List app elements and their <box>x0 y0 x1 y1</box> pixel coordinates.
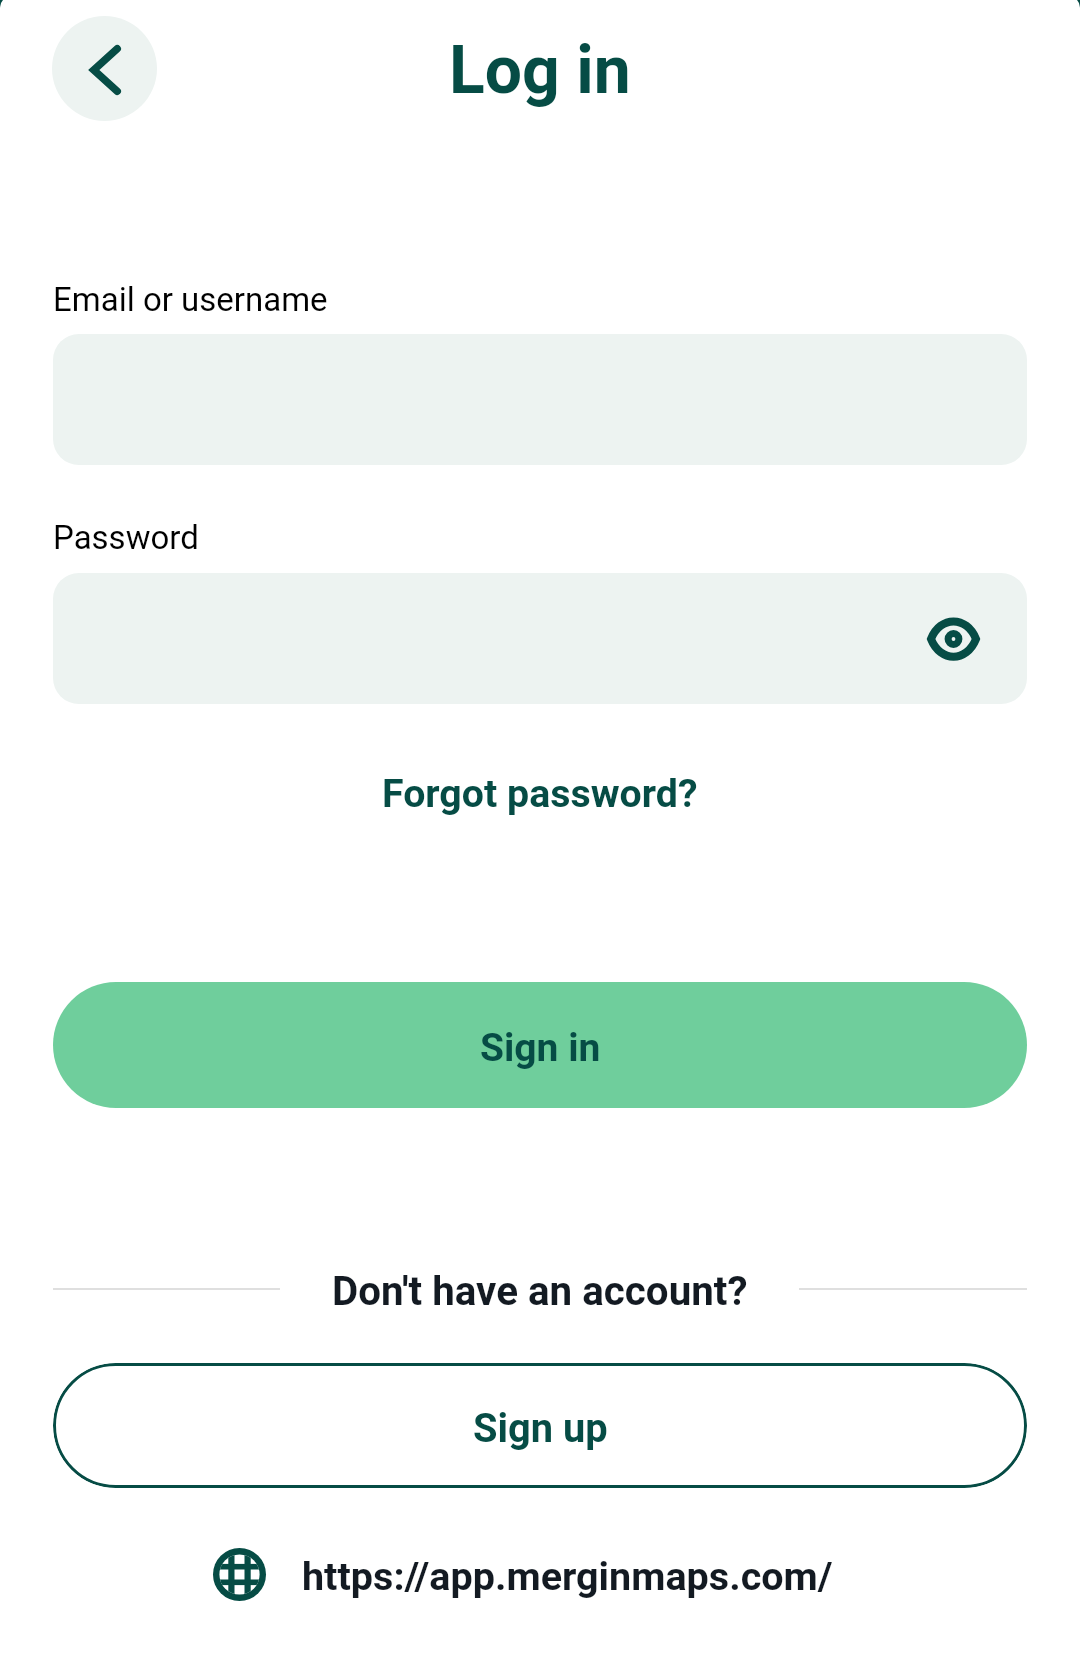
staticText: https://app.merginmaps.com/ <box>302 1553 833 1599</box>
staticText: Forgot password? <box>382 771 698 817</box>
button[interactable]: Back <box>52 16 157 121</box>
staticText: Email or username <box>53 280 328 319</box>
button[interactable]: https://app.merginmaps.com/ <box>190 1530 890 1620</box>
staticText: Sign in <box>480 1025 601 1071</box>
staticText: Password <box>53 518 199 557</box>
staticText: Don't have an account? <box>332 1268 748 1315</box>
staticText: Log in <box>449 32 631 109</box>
button[interactable]: Forgot password? <box>382 771 698 817</box>
button[interactable]: Sign up <box>53 1363 1027 1488</box>
button[interactable] <box>53 573 1027 704</box>
staticText: Sign up <box>473 1405 608 1452</box>
button[interactable]: Sign in <box>53 982 1027 1108</box>
button[interactable]: Show password <box>913 599 993 679</box>
